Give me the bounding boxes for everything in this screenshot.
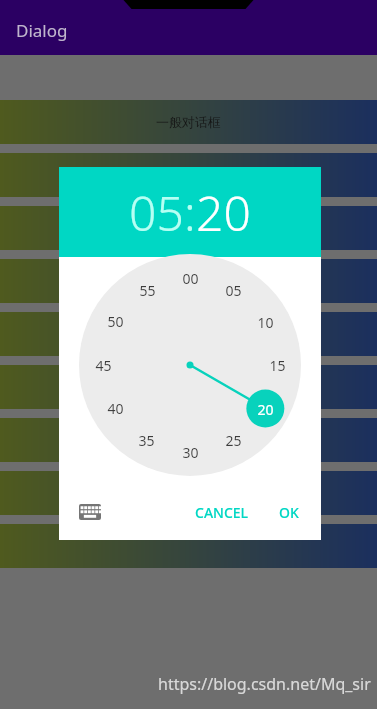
staticText: 00: [182, 269, 199, 288]
staticText: OK: [279, 503, 299, 522]
button[interactable]: 05: [129, 180, 184, 245]
button[interactable]: 进度对话框: [0, 312, 377, 356]
button[interactable]: 25: [225, 431, 242, 450]
button[interactable]: 05: [225, 281, 242, 300]
staticText: 15: [269, 356, 286, 375]
button[interactable]: 自定义对话框: [0, 471, 377, 515]
button[interactable]: 单选对话框: [0, 206, 377, 250]
staticText: 日期对话框: [156, 379, 221, 395]
staticText: 45: [95, 356, 112, 375]
button[interactable]: 00: [182, 269, 199, 288]
staticText: 35: [138, 431, 155, 450]
staticText: Dialog: [16, 19, 68, 42]
button[interactable]: CANCEL: [187, 497, 257, 528]
button[interactable]: 日期对话框: [0, 365, 377, 409]
staticText: 05: [225, 281, 242, 300]
staticText: 55: [139, 281, 156, 300]
staticText: :: [184, 180, 196, 245]
button[interactable]: 列表对话框: [0, 153, 377, 197]
button[interactable]: 30: [182, 443, 199, 462]
staticText: 30: [182, 443, 199, 462]
button[interactable]: 45: [95, 356, 112, 375]
button[interactable]: 10: [257, 313, 274, 332]
staticText: 50: [107, 312, 124, 331]
button[interactable]: 一般对话框: [0, 100, 377, 144]
button[interactable]: OK: [271, 497, 307, 528]
staticText: 10: [257, 313, 274, 332]
button[interactable]: 多选对话框: [0, 259, 377, 303]
staticText: https://blog.csdn.net/Mq_sir: [158, 673, 371, 695]
button[interactable]: 15: [269, 356, 286, 375]
staticText: 一般对话框: [156, 114, 221, 130]
button[interactable]: 50: [107, 312, 124, 331]
button[interactable]: 40: [107, 399, 124, 418]
button[interactable]: [0, 524, 377, 568]
staticText: 25: [225, 431, 242, 450]
staticText: CANCEL: [195, 503, 249, 522]
button[interactable]: 时间对话框: [0, 418, 377, 462]
button[interactable]: 20: [257, 400, 274, 419]
staticText: 20: [257, 400, 274, 419]
button[interactable]: 35: [138, 431, 155, 450]
button[interactable]: Switch to text input: [73, 495, 107, 529]
button[interactable]: 20: [196, 180, 251, 245]
staticText: 单选对话框: [156, 220, 221, 236]
button[interactable]: 55: [139, 281, 156, 300]
staticText: 多选对话框: [156, 273, 221, 289]
staticText: 40: [107, 399, 124, 418]
